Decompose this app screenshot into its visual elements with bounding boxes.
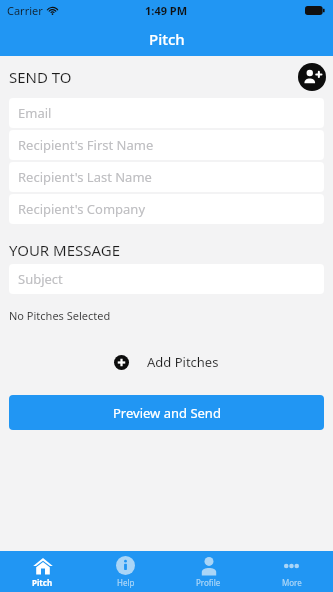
- button[interactable]: More: [250, 551, 333, 592]
- staticText: No Pitches Selected: [9, 308, 111, 323]
- button[interactable]: Add contact: [297, 62, 327, 92]
- button[interactable]: Recipient's Last Name: [9, 162, 324, 192]
- staticText: SEND TO: [9, 67, 72, 87]
- staticText: Preview and Send: [113, 404, 221, 422]
- button[interactable]: Help: [84, 551, 167, 592]
- staticText: More: [282, 577, 302, 588]
- staticText: YOUR MESSAGE: [9, 240, 121, 260]
- button[interactable]: Email: [9, 98, 324, 128]
- staticText: Help: [117, 577, 135, 588]
- button[interactable]: Recipient's First Name: [9, 130, 324, 160]
- staticText: Subject: [18, 270, 63, 288]
- staticText: Recipient's Last Name: [18, 168, 152, 186]
- staticText: Pitch: [32, 577, 53, 588]
- button[interactable]: Profile: [167, 551, 250, 592]
- button[interactable]: Recipient's Company: [9, 194, 324, 224]
- staticText: Recipient's Company: [18, 200, 146, 218]
- button[interactable]: Subject: [9, 264, 324, 294]
- staticText: Profile: [196, 577, 221, 588]
- staticText: Pitch: [149, 29, 185, 49]
- button[interactable]: Add Pitches: [106, 349, 227, 375]
- staticText: Add Pitches: [147, 353, 219, 371]
- staticText: 1:49 PM: [145, 3, 188, 18]
- staticText: Carrier: [7, 3, 43, 18]
- staticText: Recipient's First Name: [18, 136, 154, 154]
- staticText: Email: [18, 104, 52, 122]
- button[interactable]: Pitch: [0, 551, 84, 592]
- button[interactable]: Preview and Send: [9, 395, 324, 430]
